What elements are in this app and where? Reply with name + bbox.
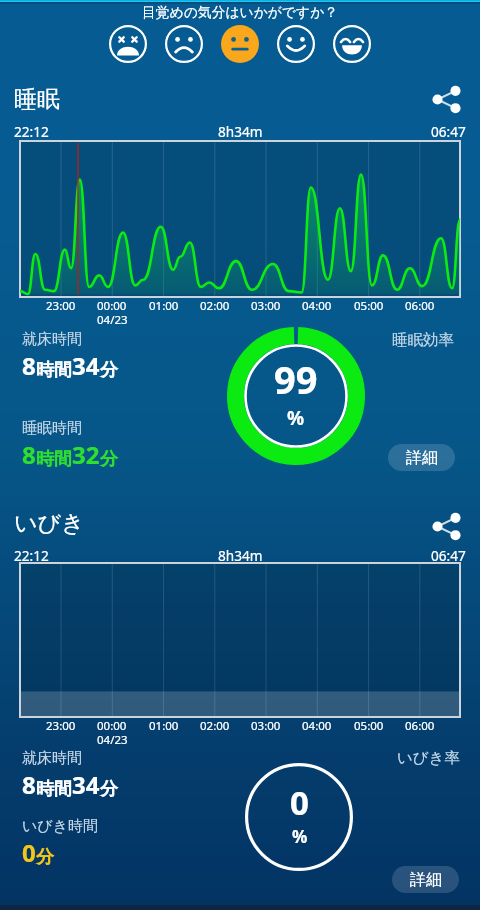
staticText: 詳細 bbox=[406, 448, 438, 468]
staticText: 02:00 bbox=[200, 298, 230, 314]
staticText: 睡眠時間 bbox=[22, 419, 82, 438]
staticText: 0 bbox=[22, 836, 36, 869]
staticText: 02:00 bbox=[200, 718, 230, 734]
staticText: 04/23 bbox=[97, 732, 128, 744]
staticText: 00:00 bbox=[97, 298, 127, 314]
staticText: 分 bbox=[100, 778, 118, 801]
button[interactable]: Mood 5 bbox=[333, 25, 371, 63]
staticText: 32 bbox=[72, 438, 100, 471]
staticText: 04/23 bbox=[97, 312, 128, 324]
staticText: 34 bbox=[72, 768, 100, 801]
staticText: 分 bbox=[100, 448, 118, 471]
staticText: いびき率 bbox=[397, 748, 461, 768]
staticText: 04:00 bbox=[302, 298, 332, 314]
staticText: 分 bbox=[36, 846, 54, 869]
staticText: 99 bbox=[274, 353, 318, 405]
staticText: 分 bbox=[100, 359, 118, 382]
staticText: 06:47 bbox=[431, 546, 466, 565]
staticText: 06:47 bbox=[431, 122, 466, 141]
staticText: 0 bbox=[290, 780, 309, 825]
staticText: 時間 bbox=[36, 778, 72, 801]
staticText: 23:00 bbox=[46, 298, 76, 314]
button[interactable]: Mood 4 bbox=[277, 25, 315, 63]
staticText: 23:00 bbox=[46, 718, 76, 734]
staticText: 05:00 bbox=[354, 718, 384, 734]
staticText: 8 bbox=[22, 349, 36, 382]
staticText: 時間 bbox=[36, 359, 72, 382]
staticText: 03:00 bbox=[251, 298, 281, 314]
staticText: 就床時間 bbox=[22, 749, 82, 768]
button[interactable]: Share sleep bbox=[428, 81, 464, 117]
staticText: 22:12 bbox=[14, 122, 49, 141]
button[interactable]: 詳細 bbox=[392, 866, 459, 893]
staticText: 8h34m bbox=[218, 122, 263, 141]
staticText: 就床時間 bbox=[22, 330, 82, 349]
staticText: 時間 bbox=[36, 448, 72, 471]
staticText: 8h34m bbox=[218, 546, 263, 565]
staticText: 06:00 bbox=[405, 718, 435, 734]
button[interactable]: Mood 1 bbox=[109, 25, 147, 63]
staticText: 06:00 bbox=[405, 298, 435, 314]
staticText: 03:00 bbox=[251, 718, 281, 734]
staticText: 目覚めの気分はいかがですか？ bbox=[142, 4, 339, 21]
staticText: 01:00 bbox=[149, 298, 179, 314]
button[interactable]: Mood 2 bbox=[165, 25, 203, 63]
staticText: 8 bbox=[22, 768, 36, 801]
staticText: 睡眠 bbox=[14, 85, 60, 114]
staticText: 05:00 bbox=[354, 298, 384, 314]
staticText: 04:00 bbox=[302, 718, 332, 734]
staticText: % bbox=[287, 405, 305, 431]
staticText: 34 bbox=[72, 349, 100, 382]
button[interactable]: Mood 3 bbox=[221, 25, 259, 63]
button[interactable]: Share snore bbox=[428, 508, 464, 544]
staticText: % bbox=[292, 825, 308, 848]
staticText: 睡眠効率 bbox=[392, 330, 454, 350]
staticText: 22:12 bbox=[14, 546, 49, 565]
staticText: 00:00 bbox=[97, 718, 127, 734]
staticText: 詳細 bbox=[410, 870, 442, 890]
staticText: 8 bbox=[22, 438, 36, 471]
staticText: いびき時間 bbox=[22, 817, 99, 836]
button[interactable]: 詳細 bbox=[388, 444, 455, 471]
staticText: 01:00 bbox=[149, 718, 179, 734]
staticText: いびき bbox=[14, 509, 85, 538]
